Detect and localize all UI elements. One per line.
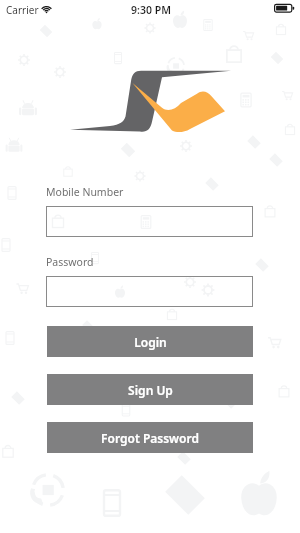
staticText: Forgot Password [101, 430, 199, 446]
button[interactable]: Sign Up [47, 374, 253, 405]
staticText: Carrier [6, 3, 39, 17]
button[interactable] [46, 206, 253, 237]
staticText: Sign Up [128, 382, 173, 398]
staticText: Login [134, 334, 167, 350]
button[interactable]: Login [47, 326, 253, 357]
staticText: 9:30 PM [131, 3, 171, 17]
button[interactable] [46, 276, 253, 307]
staticText: Mobile Number [46, 185, 124, 199]
staticText: Password [46, 255, 94, 269]
button[interactable]: Forgot Password [47, 422, 253, 453]
